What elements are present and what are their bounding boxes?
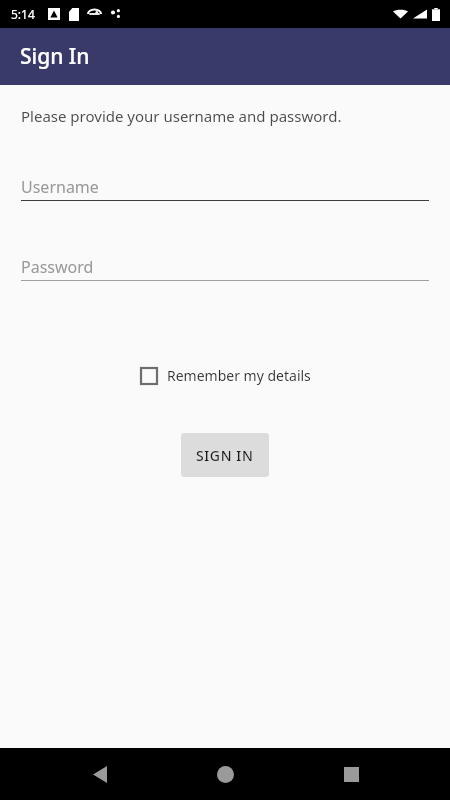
button[interactable]: Password <box>21 253 429 281</box>
button[interactable]: Remember my details checkbox <box>136 362 315 389</box>
staticText: 5:14 <box>11 6 35 22</box>
staticText: Please provide your username and passwor… <box>21 106 342 126</box>
staticText: Sign In <box>20 42 90 71</box>
button[interactable]: Home <box>199 748 251 800</box>
staticText: SIGN IN <box>196 446 254 465</box>
button[interactable]: Recent apps <box>325 748 377 800</box>
button[interactable]: SIGN IN <box>181 433 269 477</box>
staticText: Remember my details <box>167 366 311 385</box>
button[interactable]: Back <box>74 748 126 800</box>
button[interactable]: Username <box>21 173 429 201</box>
other: Remember my details checkbox <box>140 367 158 385</box>
staticText: Username <box>21 176 99 198</box>
staticText: Password <box>21 256 94 278</box>
